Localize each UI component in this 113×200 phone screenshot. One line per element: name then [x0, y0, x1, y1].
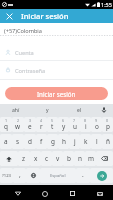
button[interactable]: x [30, 151, 41, 166]
staticText: x [34, 154, 38, 163]
button[interactable]: 6 [58, 117, 69, 132]
button[interactable]: 1 [0, 117, 12, 132]
staticText: d [28, 137, 32, 146]
button[interactable]: b [63, 151, 74, 166]
button[interactable]: Close [0, 9, 19, 23]
staticText: r [40, 122, 43, 131]
button[interactable]: Voice input [95, 104, 113, 116]
button[interactable]: l [91, 134, 102, 149]
staticText: v [56, 154, 60, 163]
button[interactable]: c [41, 151, 52, 166]
staticText: s [16, 137, 20, 146]
staticText: Cuenta [15, 49, 34, 57]
button[interactable]: Recents [65, 186, 80, 200]
staticText: Iniciar sesión [37, 90, 76, 98]
staticText: 5 [51, 118, 54, 123]
button[interactable]: (+57)Colombia [4, 27, 42, 35]
button[interactable]: Backspace [96, 151, 113, 166]
button[interactable]: 3 [24, 117, 36, 132]
staticText: 1:55 [101, 1, 112, 8]
staticText: el [77, 107, 82, 114]
staticText: Iniciar sesión [21, 11, 69, 21]
button[interactable]: 8 [80, 117, 91, 132]
staticText: a [4, 137, 8, 146]
button[interactable]: ?123 [0, 168, 13, 183]
button[interactable]: 7 [69, 117, 80, 132]
button[interactable]: Cuenta [0, 44, 113, 60]
staticText: h [62, 137, 66, 146]
button[interactable]: 4 [36, 117, 47, 132]
staticText: 6 [62, 118, 65, 123]
staticText: g [51, 137, 55, 146]
staticText: z [22, 154, 26, 163]
staticText: q [4, 122, 8, 131]
button[interactable]: k [80, 134, 91, 149]
button[interactable]: f [36, 134, 47, 149]
staticText: 1 [5, 118, 8, 123]
button[interactable]: Shift [0, 151, 18, 166]
staticText: 9 [95, 118, 98, 123]
button[interactable]: Back [10, 186, 25, 200]
staticText: 4 [40, 118, 43, 123]
staticText: ?123 [2, 173, 12, 179]
staticText: . [82, 170, 84, 179]
staticText: y [46, 107, 49, 114]
button[interactable]: n [74, 151, 85, 166]
staticText: m [88, 154, 94, 163]
staticText: f [40, 137, 43, 146]
staticText: o [95, 122, 99, 131]
button[interactable]: . [76, 168, 90, 183]
button[interactable]: Switch keyboard [92, 186, 107, 200]
button[interactable]: Español [40, 168, 76, 183]
button[interactable]: j [69, 134, 80, 149]
button[interactable]: el [63, 104, 95, 116]
staticText: y [62, 122, 66, 131]
button[interactable]: m [85, 151, 96, 166]
staticText: t [51, 122, 54, 131]
button[interactable]: y [31, 104, 63, 116]
staticText: l [96, 137, 98, 146]
staticText: u [73, 122, 77, 131]
button[interactable]: s [12, 134, 24, 149]
button[interactable]: h [58, 134, 69, 149]
staticText: 8 [84, 118, 87, 123]
staticText: n [78, 154, 82, 163]
button[interactable]: ñ [102, 134, 113, 149]
button[interactable]: 9 [91, 117, 102, 132]
button[interactable]: d [24, 134, 36, 149]
staticText: Español [50, 173, 66, 179]
staticText: e [28, 122, 32, 131]
button[interactable]: Iniciar sesión [5, 87, 108, 100]
staticText: ñ [106, 137, 110, 146]
button[interactable]: a [0, 134, 12, 149]
staticText: 7 [73, 118, 76, 123]
staticText: b [67, 154, 71, 163]
button[interactable]: , [13, 168, 26, 183]
button[interactable]: z [18, 151, 30, 166]
staticText: 2 [17, 118, 20, 123]
staticText: , [19, 170, 21, 179]
button[interactable]: 5 [47, 117, 58, 132]
button[interactable]: Change language [26, 168, 40, 183]
button[interactable]: 0 [102, 117, 113, 132]
staticText: Contraseña [15, 67, 46, 75]
staticText: ahí [12, 107, 20, 114]
staticText: j [74, 137, 76, 146]
button[interactable]: Enter [90, 168, 113, 183]
button[interactable]: g [47, 134, 58, 149]
staticText: 0 [106, 118, 109, 123]
button[interactable]: 2 [12, 117, 24, 132]
staticText: p [106, 122, 110, 131]
button[interactable]: Contraseña [0, 60, 113, 79]
staticText: k [84, 137, 88, 146]
button[interactable]: Home [37, 186, 52, 200]
staticText: c [45, 154, 49, 163]
staticText: i [85, 122, 87, 131]
button[interactable]: v [52, 151, 63, 166]
staticText: w [15, 122, 21, 131]
button[interactable]: ahí [0, 104, 31, 116]
staticText: 3 [29, 118, 32, 123]
